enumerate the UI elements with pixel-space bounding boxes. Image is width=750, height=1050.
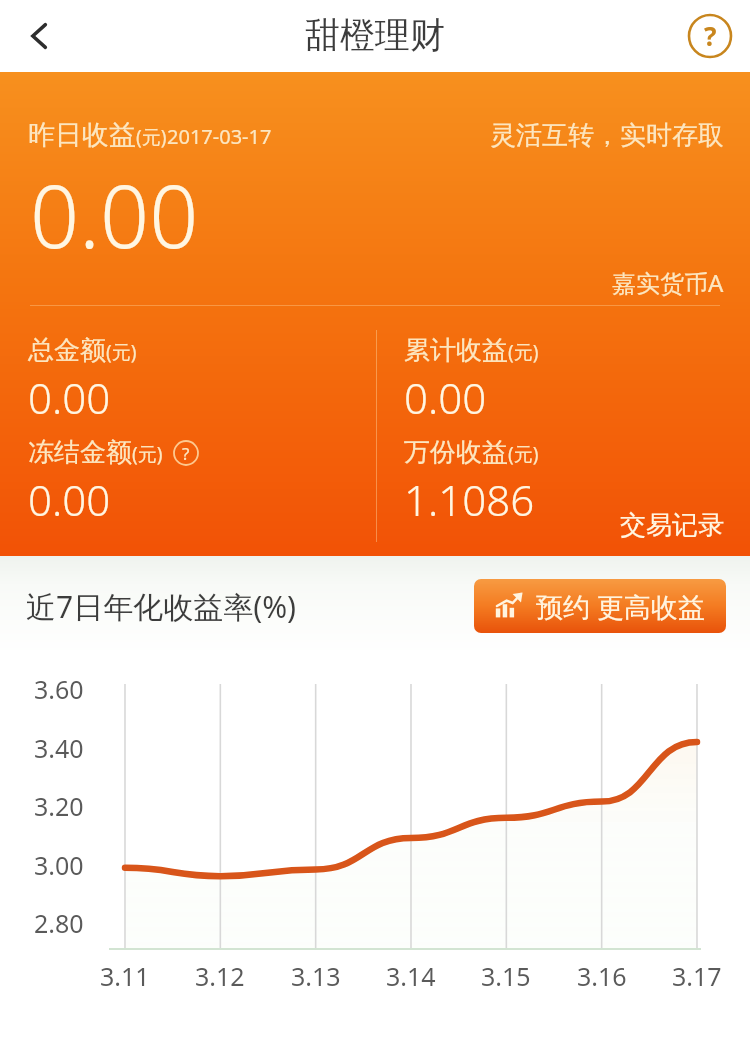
staticText: 3.14 — [386, 959, 436, 993]
staticText: 灵活互转，实时存取 — [490, 119, 724, 152]
button[interactable]: 交易记录 — [620, 509, 724, 542]
staticText: 3.11 — [100, 959, 150, 993]
staticText: 2017-03-17 — [167, 123, 272, 150]
staticText: 0.00 — [404, 369, 487, 426]
staticText: (元) — [106, 339, 137, 365]
staticText: 3.15 — [481, 959, 531, 993]
staticText: 3.20 — [34, 789, 84, 823]
staticText: 总金额 — [28, 334, 106, 367]
button[interactable]: 嘉实货币A — [612, 266, 724, 299]
staticText: 3.16 — [577, 959, 627, 993]
button[interactable]: Frozen amount info — [171, 438, 201, 468]
staticText: 预约 更高收益 — [536, 588, 706, 625]
staticText: 0.00 — [28, 471, 111, 528]
staticText: 累计收益 — [404, 334, 508, 367]
staticText: (元) — [508, 339, 539, 365]
staticText: ? — [182, 442, 190, 465]
staticText: 3.60 — [34, 672, 84, 706]
staticText: 3.40 — [34, 731, 84, 765]
button[interactable]: Help — [684, 10, 736, 62]
button[interactable]: Back — [10, 6, 70, 66]
staticText: 0.00 — [28, 369, 111, 426]
staticText: 3.00 — [34, 848, 84, 882]
staticText: (元) — [136, 124, 167, 150]
staticText: 甜橙理财 — [305, 13, 445, 57]
staticText: 万份收益 — [404, 436, 508, 469]
staticText: 3.13 — [291, 959, 341, 993]
staticText: 近7日年化收益率(%) — [26, 586, 297, 627]
staticText: 3.17 — [672, 959, 722, 993]
staticText: 2.80 — [34, 906, 84, 940]
staticText: 1.1086 — [404, 471, 535, 528]
staticText: 昨日收益 — [28, 118, 136, 152]
staticText: ? — [704, 18, 717, 53]
button[interactable]: 预约 更高收益 — [474, 579, 726, 633]
staticText: 冻结金额 — [28, 436, 132, 469]
staticText: (元) — [508, 441, 539, 467]
staticText: 3.12 — [195, 959, 245, 993]
staticText: 0.00 — [30, 156, 199, 273]
staticText: (元) — [132, 441, 163, 467]
